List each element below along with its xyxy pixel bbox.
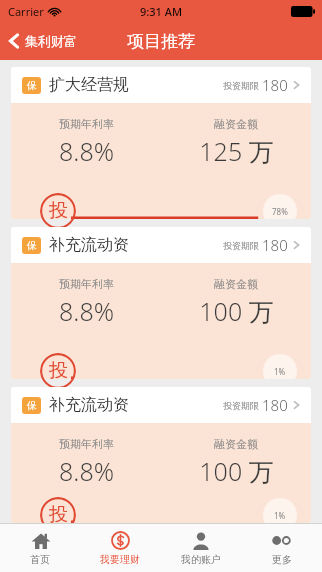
staticText: 125 万	[199, 134, 274, 168]
staticText: 1%	[274, 366, 286, 377]
staticText: 投资期限	[223, 400, 259, 411]
button[interactable]: 投资	[40, 353, 76, 389]
staticText: 78%	[272, 206, 288, 217]
staticText: 保	[27, 79, 37, 92]
button[interactable]: 更多	[241, 524, 322, 572]
staticText: 首页	[30, 553, 50, 566]
staticText: 融资金额	[214, 117, 258, 131]
staticText: 保	[27, 399, 37, 412]
button[interactable]: 保	[11, 227, 311, 379]
staticText: 8.8%	[59, 454, 114, 488]
staticText: 100 万	[199, 454, 274, 488]
button[interactable]: 我的账户	[160, 524, 241, 572]
button[interactable]: 保	[11, 67, 311, 219]
button[interactable]: 保	[11, 387, 311, 523]
button[interactable]: 投资	[40, 193, 76, 229]
staticText: 100 万	[199, 294, 274, 328]
staticText: 投	[49, 503, 68, 527]
staticText: 投资期限	[223, 80, 259, 91]
staticText: 8.8%	[59, 294, 114, 328]
staticText: 更多	[272, 553, 292, 566]
staticText: 8.8%	[59, 134, 114, 168]
staticText: 集利财富	[25, 33, 77, 49]
staticText: 融资金额	[214, 277, 258, 291]
staticText: 9:31 AM	[140, 4, 183, 19]
staticText: 我的账户	[181, 553, 221, 566]
staticText: 补充流动资	[49, 235, 129, 255]
button[interactable]: 投资	[40, 497, 76, 533]
staticText: 预期年利率	[59, 437, 114, 451]
button[interactable]: 我要理财	[80, 524, 160, 572]
staticText: 我要理财	[100, 553, 140, 566]
staticText: 投	[49, 359, 68, 383]
staticText: 180	[262, 75, 288, 95]
staticText: 180	[262, 235, 288, 255]
button[interactable]: 首页	[0, 524, 80, 572]
staticText: Carrier	[8, 4, 44, 19]
staticText: 扩大经营规	[49, 75, 129, 95]
staticText: 融资金额	[214, 437, 258, 451]
staticText: 预期年利率	[59, 277, 114, 291]
staticText: 补充流动资	[49, 395, 129, 415]
staticText: 保	[27, 239, 37, 252]
staticText: 投资期限	[223, 240, 259, 251]
staticText: 项目推荐	[127, 31, 195, 52]
staticText: 180	[262, 395, 288, 415]
staticText: 1%	[274, 510, 286, 521]
staticText: 预期年利率	[59, 117, 114, 131]
button[interactable]: 集利财富	[0, 22, 85, 60]
staticText: 投	[49, 199, 68, 223]
